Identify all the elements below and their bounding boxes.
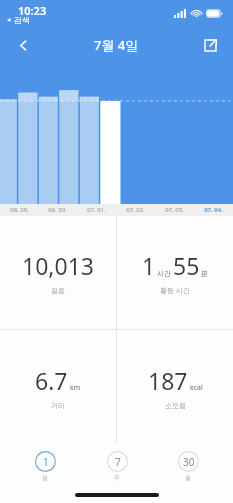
button[interactable]: 1 xyxy=(19,444,71,489)
staticText: 걸음 xyxy=(51,286,65,295)
staticText: 55 xyxy=(173,250,200,281)
button[interactable]: 30 xyxy=(162,444,214,489)
button[interactable]: Share xyxy=(193,28,227,62)
staticText: 분 xyxy=(201,269,208,278)
staticText: 06. 30. xyxy=(48,206,67,214)
staticText: 6.7 xyxy=(35,365,68,396)
staticText: 07. 03. xyxy=(165,206,184,214)
staticText: 10:23 xyxy=(18,3,47,18)
staticText: kcal xyxy=(190,383,203,393)
staticText: 검색 xyxy=(14,15,30,25)
button[interactable]: 10,013 xyxy=(0,216,116,329)
staticText: 187 xyxy=(148,365,188,396)
staticText: km xyxy=(70,383,81,393)
staticText: 07. 02. xyxy=(126,206,145,214)
button[interactable]: 7 xyxy=(91,444,143,489)
staticText: 07. 04. xyxy=(204,206,223,214)
staticText: 07. 01. xyxy=(87,206,106,214)
staticText: 06. 29. xyxy=(10,206,29,214)
button[interactable]: 6.7 xyxy=(0,330,116,444)
staticText: 시간 xyxy=(157,269,171,278)
button[interactable]: Back xyxy=(6,28,40,62)
staticText: 7 xyxy=(115,455,121,469)
button[interactable]: 187 xyxy=(117,330,233,444)
staticText: 7월 4일 xyxy=(94,36,139,54)
staticText: 활동 시간 xyxy=(160,286,190,296)
staticText: 30 xyxy=(183,455,195,469)
staticText: 10,013 xyxy=(22,250,94,281)
button[interactable]: 1 xyxy=(117,216,233,329)
staticText: 주 xyxy=(114,474,120,482)
staticText: 거리 xyxy=(51,401,65,410)
staticText: 1 xyxy=(43,455,49,469)
staticText: 소모됨 xyxy=(165,401,186,410)
staticText: 일 xyxy=(42,474,48,482)
staticText: 1 xyxy=(142,250,156,281)
staticText: 월 xyxy=(185,474,191,482)
